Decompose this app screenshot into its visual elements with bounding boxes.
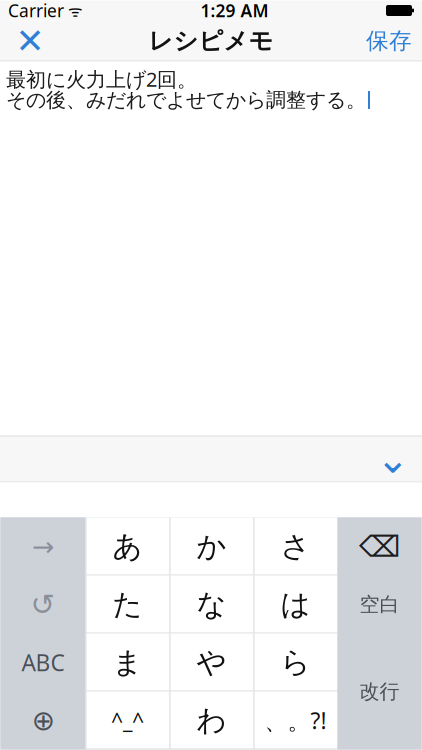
staticText: 1:29 AM bbox=[200, 0, 268, 22]
staticText: ^_^ bbox=[111, 706, 144, 735]
button[interactable]: 保存 bbox=[366, 20, 422, 61]
button[interactable]: Delete bbox=[337, 517, 421, 575]
staticText: ら bbox=[280, 644, 310, 680]
staticText: さ bbox=[280, 528, 310, 564]
staticText: は bbox=[280, 586, 310, 622]
button[interactable]: Close bbox=[0, 20, 60, 61]
staticText: レシピメモ bbox=[148, 26, 273, 56]
button[interactable]: ABC bbox=[0, 633, 85, 691]
staticText: 保存 bbox=[366, 27, 412, 55]
button[interactable]: さ bbox=[253, 517, 337, 575]
staticText: ま bbox=[112, 644, 142, 680]
staticText: ᯤ bbox=[64, 0, 83, 21]
staticText: わ bbox=[196, 702, 226, 738]
button[interactable]: ⊕ bbox=[0, 691, 85, 749]
staticText: Carrier bbox=[8, 0, 64, 22]
staticText: 改行 bbox=[359, 679, 399, 704]
staticText: ✕ bbox=[15, 21, 44, 61]
staticText: 、。?! bbox=[264, 705, 326, 736]
button[interactable]: Hide keyboard bbox=[364, 436, 422, 482]
staticText: ABC bbox=[21, 647, 64, 677]
staticText: ⊕ bbox=[31, 705, 54, 736]
button[interactable]: 改行 bbox=[337, 633, 421, 749]
button[interactable]: ら bbox=[253, 633, 337, 691]
staticText: な bbox=[196, 586, 226, 622]
button[interactable]: わ bbox=[169, 691, 253, 749]
staticText: 最初に火力上げ2回。 bbox=[6, 66, 197, 92]
button[interactable]: ^_^ bbox=[85, 691, 169, 749]
staticText: あ bbox=[112, 528, 142, 564]
button[interactable]: は bbox=[253, 575, 337, 633]
button[interactable]: 空白 bbox=[337, 575, 421, 633]
staticText: ⌄ bbox=[376, 436, 410, 482]
button[interactable]: → bbox=[0, 517, 85, 575]
staticText: ⌫ bbox=[359, 530, 400, 563]
button[interactable]: 、。?! bbox=[253, 691, 337, 749]
staticText: → bbox=[32, 531, 54, 562]
staticText: や bbox=[196, 644, 226, 680]
button[interactable]: や bbox=[169, 633, 253, 691]
staticText: た bbox=[112, 586, 142, 622]
button[interactable]: た bbox=[85, 575, 169, 633]
button[interactable]: か bbox=[169, 517, 253, 575]
button[interactable]: ↺ bbox=[0, 575, 85, 633]
button[interactable]: な bbox=[169, 575, 253, 633]
staticText: 空白 bbox=[359, 592, 399, 617]
button[interactable]: あ bbox=[85, 517, 169, 575]
staticText: その後、みだれでよせてから調整する。 bbox=[6, 88, 366, 112]
staticText: ↺ bbox=[30, 588, 55, 621]
staticText: か bbox=[196, 528, 226, 564]
button[interactable]: ま bbox=[85, 633, 169, 691]
